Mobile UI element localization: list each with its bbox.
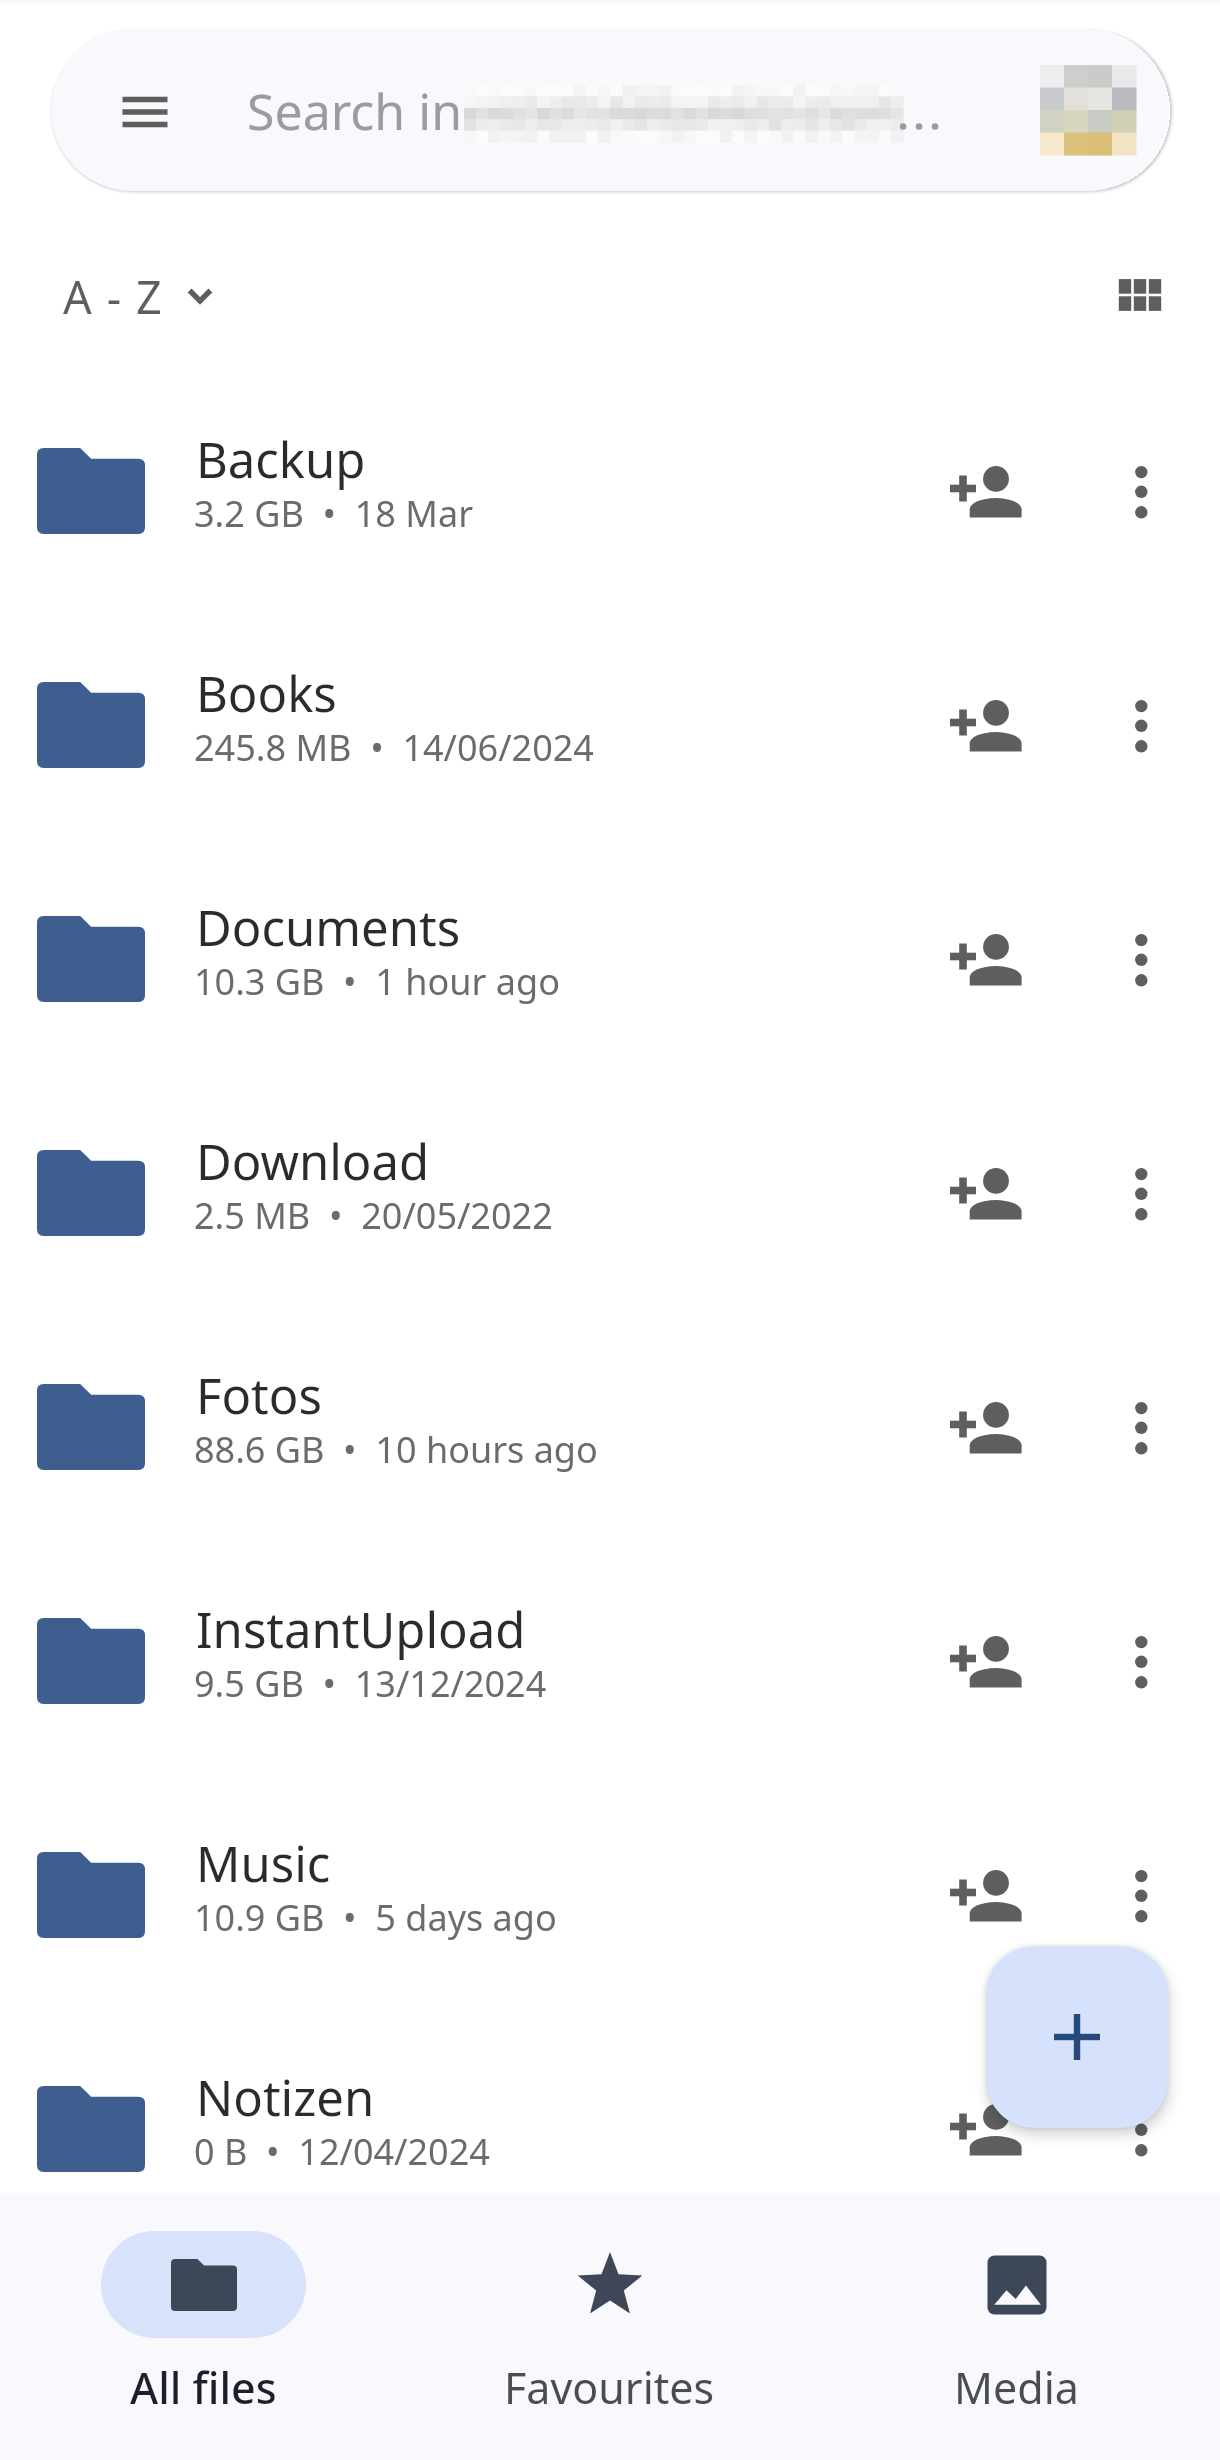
- staticText: Music: [196, 1830, 896, 1897]
- staticText: Fotos: [196, 1362, 896, 1429]
- button[interactable]: More options: [1106, 1376, 1176, 1446]
- button[interactable]: All files: [0, 2193, 406, 2460]
- staticText: 10.3 GB • 1 hour ago: [194, 957, 954, 1006]
- button[interactable]: Share: [920, 1142, 1036, 1258]
- button[interactable]: Download: [0, 1116, 1220, 1350]
- button[interactable]: Share: [920, 2078, 1036, 2194]
- button[interactable]: Open navigation menu: [105, 72, 185, 152]
- button[interactable]: More options: [1106, 674, 1176, 744]
- button[interactable]: Share: [920, 1376, 1036, 1492]
- staticText: 88.6 GB • 10 hours ago: [194, 1425, 954, 1474]
- staticText: Documents: [196, 894, 896, 961]
- staticText: Media: [954, 2358, 1079, 2417]
- button[interactable]: InstantUpload: [0, 1584, 1220, 1818]
- button[interactable]: Books: [0, 648, 1220, 882]
- button[interactable]: More options: [1106, 1610, 1176, 1680]
- button[interactable]: Share: [920, 674, 1036, 790]
- button[interactable]: More options: [1106, 1142, 1176, 1212]
- staticText: 245.8 MB • 14/06/2024: [194, 723, 954, 772]
- staticText: A - Z: [63, 266, 164, 327]
- button[interactable]: More options: [1106, 2078, 1176, 2148]
- staticText: 2.5 MB • 20/05/2022: [194, 1191, 954, 1240]
- button[interactable]: Music: [0, 1818, 1220, 2052]
- button[interactable]: Backup: [0, 414, 1220, 648]
- button[interactable]: More options: [1106, 440, 1176, 510]
- button[interactable]: More options: [1106, 908, 1176, 978]
- button[interactable]: Notizen: [0, 2052, 1220, 2286]
- staticText: 0 B • 12/04/2024: [194, 2127, 954, 2176]
- button[interactable]: Share: [920, 1844, 1036, 1960]
- button[interactable]: Add: [986, 1946, 1168, 2128]
- staticText: 3.2 GB • 18 Mar: [194, 489, 954, 538]
- staticText: Favourites: [504, 2358, 715, 2417]
- staticText: Books: [196, 660, 896, 727]
- button[interactable]: More options: [1106, 1844, 1176, 1914]
- button[interactable]: Media: [813, 2193, 1220, 2460]
- staticText: Backup: [196, 426, 896, 493]
- button[interactable]: Share: [920, 440, 1036, 556]
- staticText: Search in: [247, 77, 463, 145]
- button[interactable]: Switch to grid view: [1090, 245, 1190, 345]
- button[interactable]: Favourites: [406, 2193, 813, 2460]
- staticText: Notizen: [196, 2064, 896, 2131]
- button[interactable]: Documents: [0, 882, 1220, 1116]
- button[interactable]: Search: [51, 29, 1169, 191]
- staticText: 9.5 GB • 13/12/2024: [194, 1659, 954, 1708]
- staticText: 10.9 GB • 5 days ago: [194, 1893, 954, 1942]
- button[interactable]: A - Z: [39, 244, 239, 348]
- staticText: All files: [130, 2358, 277, 2417]
- button[interactable]: Share: [920, 908, 1036, 1024]
- button[interactable]: Share: [920, 1610, 1036, 1726]
- button[interactable]: Account: [1040, 65, 1136, 155]
- staticText: Download: [196, 1128, 896, 1195]
- button[interactable]: Fotos: [0, 1350, 1220, 1584]
- staticText: InstantUpload: [196, 1596, 896, 1663]
